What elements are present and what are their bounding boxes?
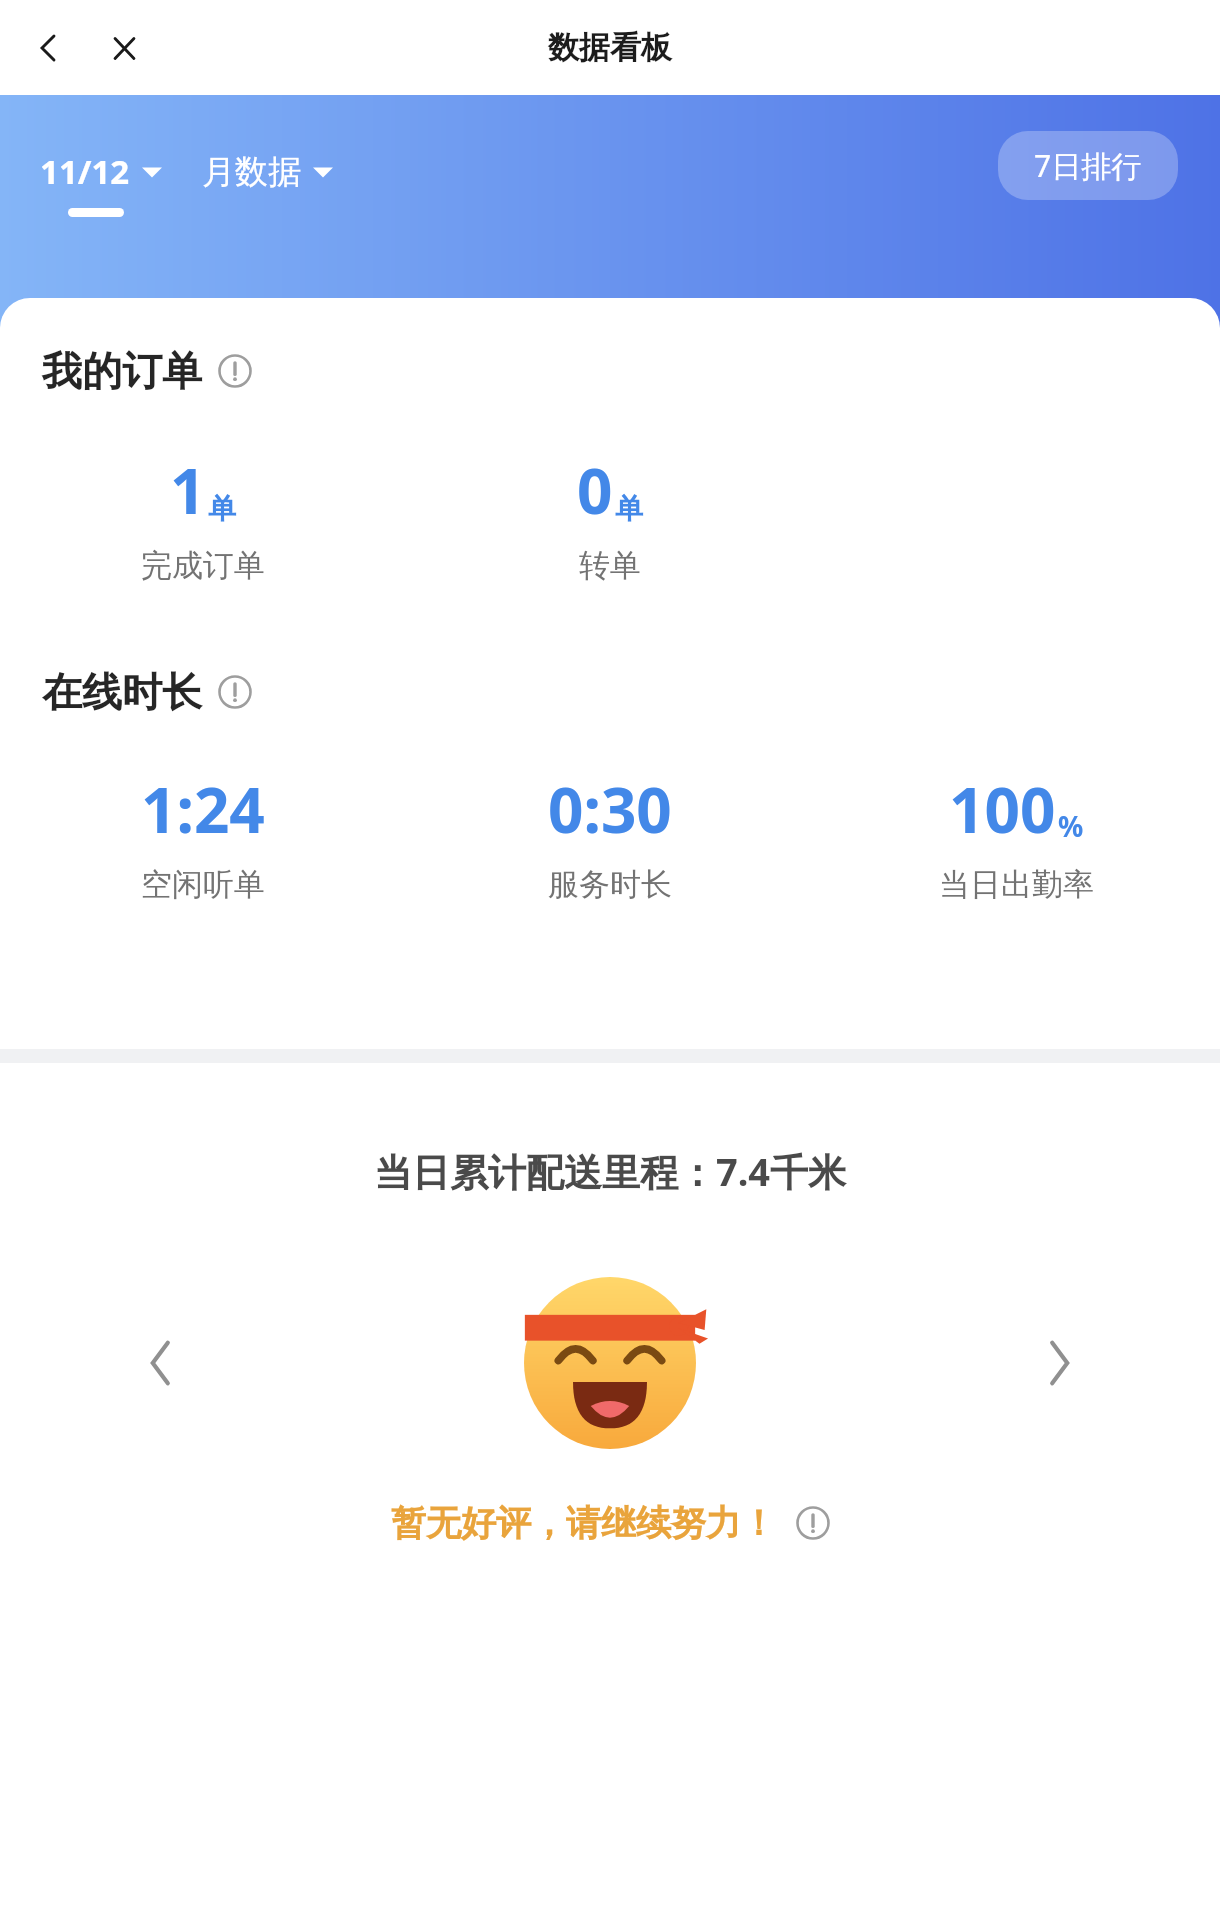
staticText: 1 [170, 448, 206, 532]
button[interactable]: Close [96, 20, 152, 76]
button[interactable]: 在线时长 [42, 667, 1220, 717]
staticText: 100 [949, 767, 1056, 851]
staticText: 服务时长 [548, 865, 672, 904]
button[interactable]: Previous [130, 1333, 190, 1393]
staticText: 月数据 [202, 151, 301, 193]
button[interactable]: 月数据 [202, 151, 333, 193]
button[interactable]: Next [1030, 1333, 1090, 1393]
button[interactable]: Back [20, 20, 76, 76]
button[interactable]: 1:24 [0, 767, 406, 904]
staticText: 转单 [579, 546, 641, 585]
staticText: 暂无好评，请继续努力！ [391, 1501, 776, 1545]
staticText: 完成订单 [141, 546, 265, 585]
staticText: 单 [208, 491, 236, 526]
staticText: 0 [577, 448, 613, 532]
button[interactable]: 7日排行 [998, 131, 1178, 200]
staticText: 7日排行 [1034, 145, 1142, 186]
other: Info [796, 1506, 830, 1540]
button[interactable]: 1 [0, 448, 406, 585]
staticText: 1:24 [141, 767, 265, 851]
staticText: 空闲听单 [141, 865, 265, 904]
staticText: 11/12 [40, 149, 130, 194]
button[interactable]: 11/12 [40, 149, 162, 194]
button[interactable]: 我的订单 [42, 346, 1220, 396]
staticText: 单 [615, 491, 643, 526]
other: Info [218, 354, 252, 388]
staticText: 0:30 [548, 767, 672, 851]
other: Info [218, 675, 252, 709]
staticText: % [1058, 807, 1084, 845]
staticText: 在线时长 [42, 667, 202, 717]
button[interactable]: 0 [406, 448, 813, 585]
button[interactable]: 100 [813, 767, 1220, 904]
staticText: 数据看板 [548, 28, 672, 67]
staticText: 我的订单 [42, 346, 202, 396]
staticText: 当日累计配送里程：7.4千米 [0, 1145, 1220, 1197]
staticText: 当日出勤率 [939, 865, 1094, 904]
button[interactable]: 0:30 [406, 767, 813, 904]
